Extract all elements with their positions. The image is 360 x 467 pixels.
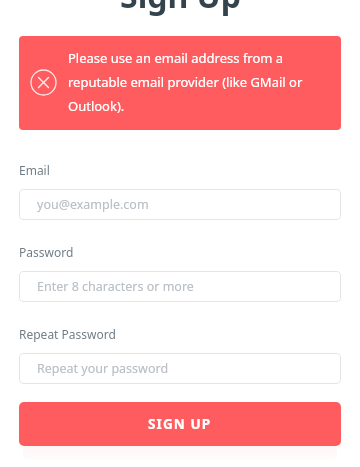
staticText: Email — [19, 162, 50, 178]
staticText: Password — [19, 244, 74, 260]
staticText: Repeat your password — [37, 360, 169, 377]
button[interactable]: Dismiss alert — [19, 36, 341, 130]
button[interactable]: you@example.com — [19, 189, 341, 220]
button[interactable]: Repeat your password — [19, 353, 341, 384]
button[interactable]: Enter 8 characters or more — [19, 271, 341, 302]
staticText: you@example.com — [37, 196, 149, 213]
staticText: Please use an email address from a reput… — [68, 49, 327, 115]
staticText: Enter 8 characters or more — [37, 278, 194, 295]
staticText: Sign Up — [120, 0, 241, 18]
button[interactable]: SIGN UP — [19, 402, 341, 446]
button[interactable]: Dismiss alert — [30, 69, 57, 96]
staticText: SIGN UP — [148, 415, 212, 433]
staticText: Repeat Password — [19, 326, 116, 342]
